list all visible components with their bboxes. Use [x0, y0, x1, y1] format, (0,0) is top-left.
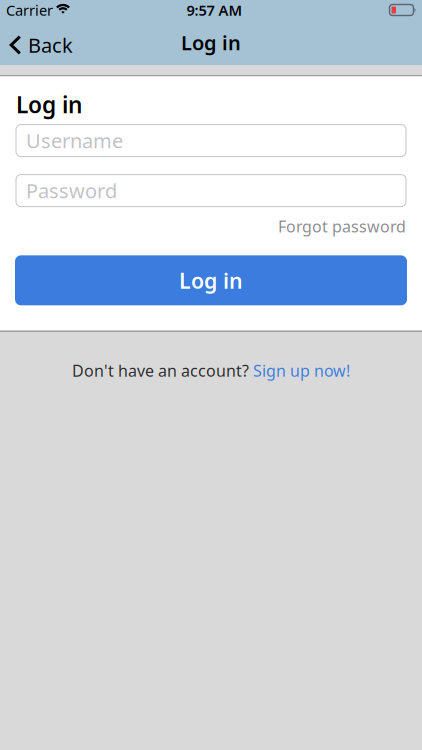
staticText: Sign up now! [253, 360, 350, 381]
staticText: Password [26, 177, 117, 204]
button[interactable]: Username [16, 125, 406, 157]
staticText: Log in [179, 266, 243, 294]
button[interactable]: Back [0, 27, 73, 58]
staticText: Carrier [6, 0, 53, 20]
staticText: Log in [16, 89, 82, 120]
button[interactable]: Sign up now! [253, 360, 350, 381]
staticText: Don't have an account? [72, 360, 249, 381]
staticText: Log in [181, 29, 241, 56]
button[interactable]: Password [16, 175, 406, 207]
staticText: Forgot password [278, 216, 406, 237]
button[interactable]: Forgot password [278, 216, 406, 237]
staticText: 9:57 AM [186, 0, 242, 20]
staticText: Back [28, 32, 73, 58]
staticText: Username [26, 127, 123, 154]
button[interactable]: Log in [15, 255, 407, 305]
